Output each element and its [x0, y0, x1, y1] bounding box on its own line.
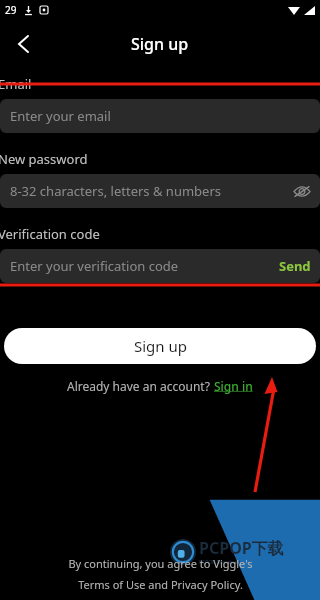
button[interactable]: Sign in [214, 378, 253, 394]
staticText: Sign up [131, 33, 189, 55]
staticText: Enter your email [10, 107, 111, 125]
staticText: Already have an account? [67, 378, 214, 394]
staticText: New password [0, 150, 88, 168]
staticText: Verification code [0, 225, 100, 243]
staticText: 29 [5, 3, 17, 17]
staticText: Send [279, 257, 311, 275]
staticText: Terms of Use and Privacy Policy. [78, 577, 243, 592]
staticText: 8-32 characters, letters & numbers [10, 182, 221, 200]
button[interactable]: 8-32 characters, letters & numbers [0, 174, 320, 208]
button[interactable]: Back [0, 21, 46, 67]
button[interactable]: Show password [291, 180, 313, 202]
button[interactable]: Terms of Use and Privacy Policy. [78, 577, 243, 592]
staticText: Email [0, 75, 32, 93]
staticText: Sign in [214, 378, 253, 394]
button[interactable]: Send [270, 251, 320, 281]
staticText: PCPOP下载 [199, 537, 284, 559]
button[interactable]: Enter your email [0, 99, 320, 133]
button[interactable]: Enter your verification code [0, 249, 320, 283]
staticText: PCPOP Download [199, 559, 241, 566]
button[interactable]: Sign up [4, 328, 316, 364]
staticText: Sign up [134, 336, 187, 356]
staticText: Enter your verification code [10, 257, 179, 275]
staticText: By continuing, you agree to Viggle's [68, 556, 253, 571]
